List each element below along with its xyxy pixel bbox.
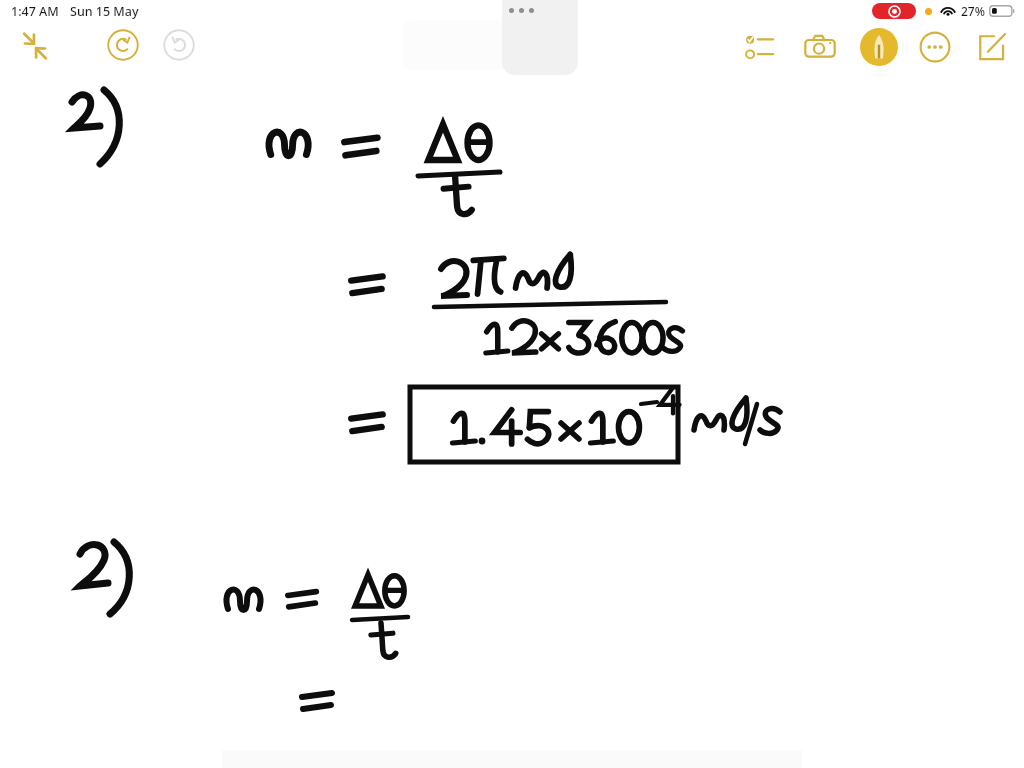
- button[interactable]: Checklist: [745, 31, 777, 63]
- button[interactable]: Undo: [105, 27, 141, 63]
- staticText: 27%: [961, 3, 985, 19]
- button[interactable]: More options: [919, 31, 951, 63]
- button[interactable]: Pen tool: [860, 28, 898, 66]
- staticText: 1:47 AM: [11, 3, 59, 20]
- button[interactable]: Screen recording active: [872, 3, 916, 19]
- button[interactable]: Collapse: [17, 28, 53, 64]
- button[interactable]: Redo: [161, 27, 197, 63]
- button[interactable]: Camera: [804, 32, 836, 64]
- button[interactable]: New note: [976, 30, 1009, 63]
- button[interactable]: Floating window: [502, 0, 578, 75]
- staticText: Sun 15 May: [70, 3, 139, 20]
